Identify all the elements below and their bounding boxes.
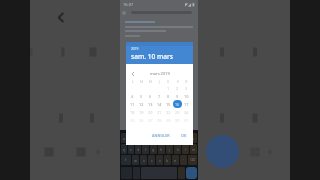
button[interactable]: ⌫ [188, 155, 197, 165]
button[interactable]: q [121, 144, 127, 154]
button[interactable]: t [150, 133, 157, 143]
button[interactable]: 23 [175, 110, 180, 115]
button[interactable]: 2 [176, 86, 179, 91]
staticText: ⇧ [124, 158, 128, 162]
button[interactable]: d [135, 144, 141, 154]
button[interactable]: p [190, 133, 197, 143]
staticText: V [167, 79, 170, 84]
button[interactable]: 1 [167, 86, 170, 91]
staticText: q [123, 147, 126, 152]
button[interactable]: 31 [184, 118, 189, 123]
button[interactable]: 7 [158, 94, 161, 99]
staticText: w [134, 158, 137, 163]
button[interactable]: m [190, 144, 197, 154]
button[interactable]: Enter [186, 167, 197, 179]
button[interactable]: 28 [157, 118, 162, 123]
button[interactable]: h [158, 144, 165, 154]
button[interactable]: 11 [130, 102, 135, 107]
button[interactable]: w [132, 155, 139, 165]
button[interactable]: b [164, 155, 171, 165]
button[interactable]: 8 [167, 94, 170, 99]
staticText: o [184, 136, 187, 141]
staticText: M [140, 79, 144, 84]
button[interactable]: o [182, 133, 189, 143]
staticText: D [185, 79, 188, 84]
staticText: t [153, 136, 155, 141]
button[interactable]: l [182, 144, 189, 154]
button[interactable]: 24 [184, 110, 189, 115]
staticText: mars 2019 [150, 71, 170, 76]
button[interactable]: ⇧ [121, 155, 131, 165]
staticText: ' [183, 158, 184, 163]
button[interactable]: 15 [166, 102, 171, 107]
button[interactable]: 3 [185, 86, 188, 91]
staticText: u [168, 136, 171, 141]
button[interactable]: 19 [139, 110, 144, 115]
button[interactable]: s [128, 144, 134, 154]
button[interactable]: 12 [139, 102, 144, 107]
button[interactable]: v [156, 155, 163, 165]
button[interactable]: 30 [175, 118, 180, 123]
button[interactable]: c [148, 155, 155, 165]
staticText: 16 [175, 102, 180, 107]
staticText: b [166, 158, 169, 163]
button[interactable]: n [172, 155, 179, 165]
staticText: ◤◢ ▮ [185, 2, 195, 7]
button[interactable]: x [140, 155, 147, 165]
button[interactable]: f [142, 144, 149, 154]
staticText: y [161, 136, 163, 141]
button[interactable]: 14 [157, 102, 162, 107]
button[interactable]: 21 [157, 110, 162, 115]
button[interactable]: 4 [131, 94, 134, 99]
button[interactable]: 10 [184, 94, 189, 99]
button[interactable]: 20 [148, 110, 153, 115]
button[interactable]: 26 [139, 118, 144, 123]
button[interactable]: 6 [149, 94, 152, 99]
button[interactable]: y [158, 133, 165, 143]
staticText: 16:07 [123, 2, 134, 7]
button[interactable]: 29 [166, 118, 171, 123]
staticText: ⌫ [190, 158, 196, 162]
staticText: k [177, 147, 179, 152]
button[interactable]: OK [179, 133, 189, 138]
button[interactable]: 25 [130, 118, 135, 123]
button[interactable]: Previous month [128, 69, 137, 78]
button[interactable]: Equals [206, 135, 239, 168]
button[interactable]: 17 [184, 102, 189, 107]
button[interactable]: k [174, 144, 181, 154]
staticText: J [159, 79, 160, 84]
button[interactable]: u [166, 133, 173, 143]
button[interactable]: g [150, 144, 157, 154]
staticText: d [137, 147, 140, 152]
staticText: ANNULER [152, 133, 170, 138]
button[interactable]: 13 [148, 102, 153, 107]
staticText: j [169, 147, 170, 152]
staticText: OK [181, 133, 187, 138]
staticText: sam. 10 mars [131, 52, 173, 61]
button[interactable]: 16 [173, 100, 182, 108]
button[interactable]: 18 [130, 110, 135, 115]
button[interactable]: j [166, 144, 173, 154]
button[interactable]: a [121, 133, 127, 143]
button[interactable]: 5 [140, 94, 143, 99]
staticText: n [174, 158, 177, 163]
button[interactable]: 9 [176, 94, 179, 99]
button[interactable]: ANNULER [150, 133, 172, 138]
button[interactable]: 22 [166, 110, 171, 115]
staticText: S [177, 79, 179, 84]
button[interactable]: 27 [148, 118, 153, 123]
staticText: l [185, 147, 186, 152]
